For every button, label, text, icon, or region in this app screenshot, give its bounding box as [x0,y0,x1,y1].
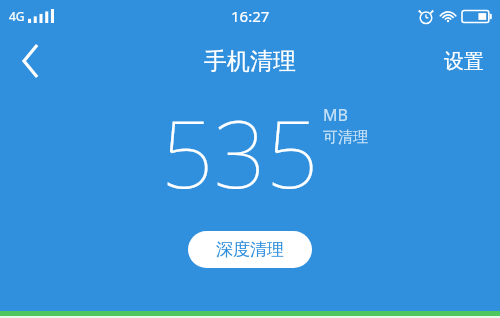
staticText: MB [323,104,348,126]
staticText: 手机清理 [204,47,296,76]
staticText: 535 [161,90,319,214]
staticText: 16:27 [231,6,270,26]
staticText: 可清理 [323,128,368,147]
button[interactable]: 设置 [428,32,500,90]
button[interactable]: 深度清理 [188,231,312,268]
staticText: 设置 [444,49,484,74]
staticText: 4G [9,8,25,24]
button[interactable]: Back [0,32,62,90]
staticText: 深度清理 [216,239,284,260]
